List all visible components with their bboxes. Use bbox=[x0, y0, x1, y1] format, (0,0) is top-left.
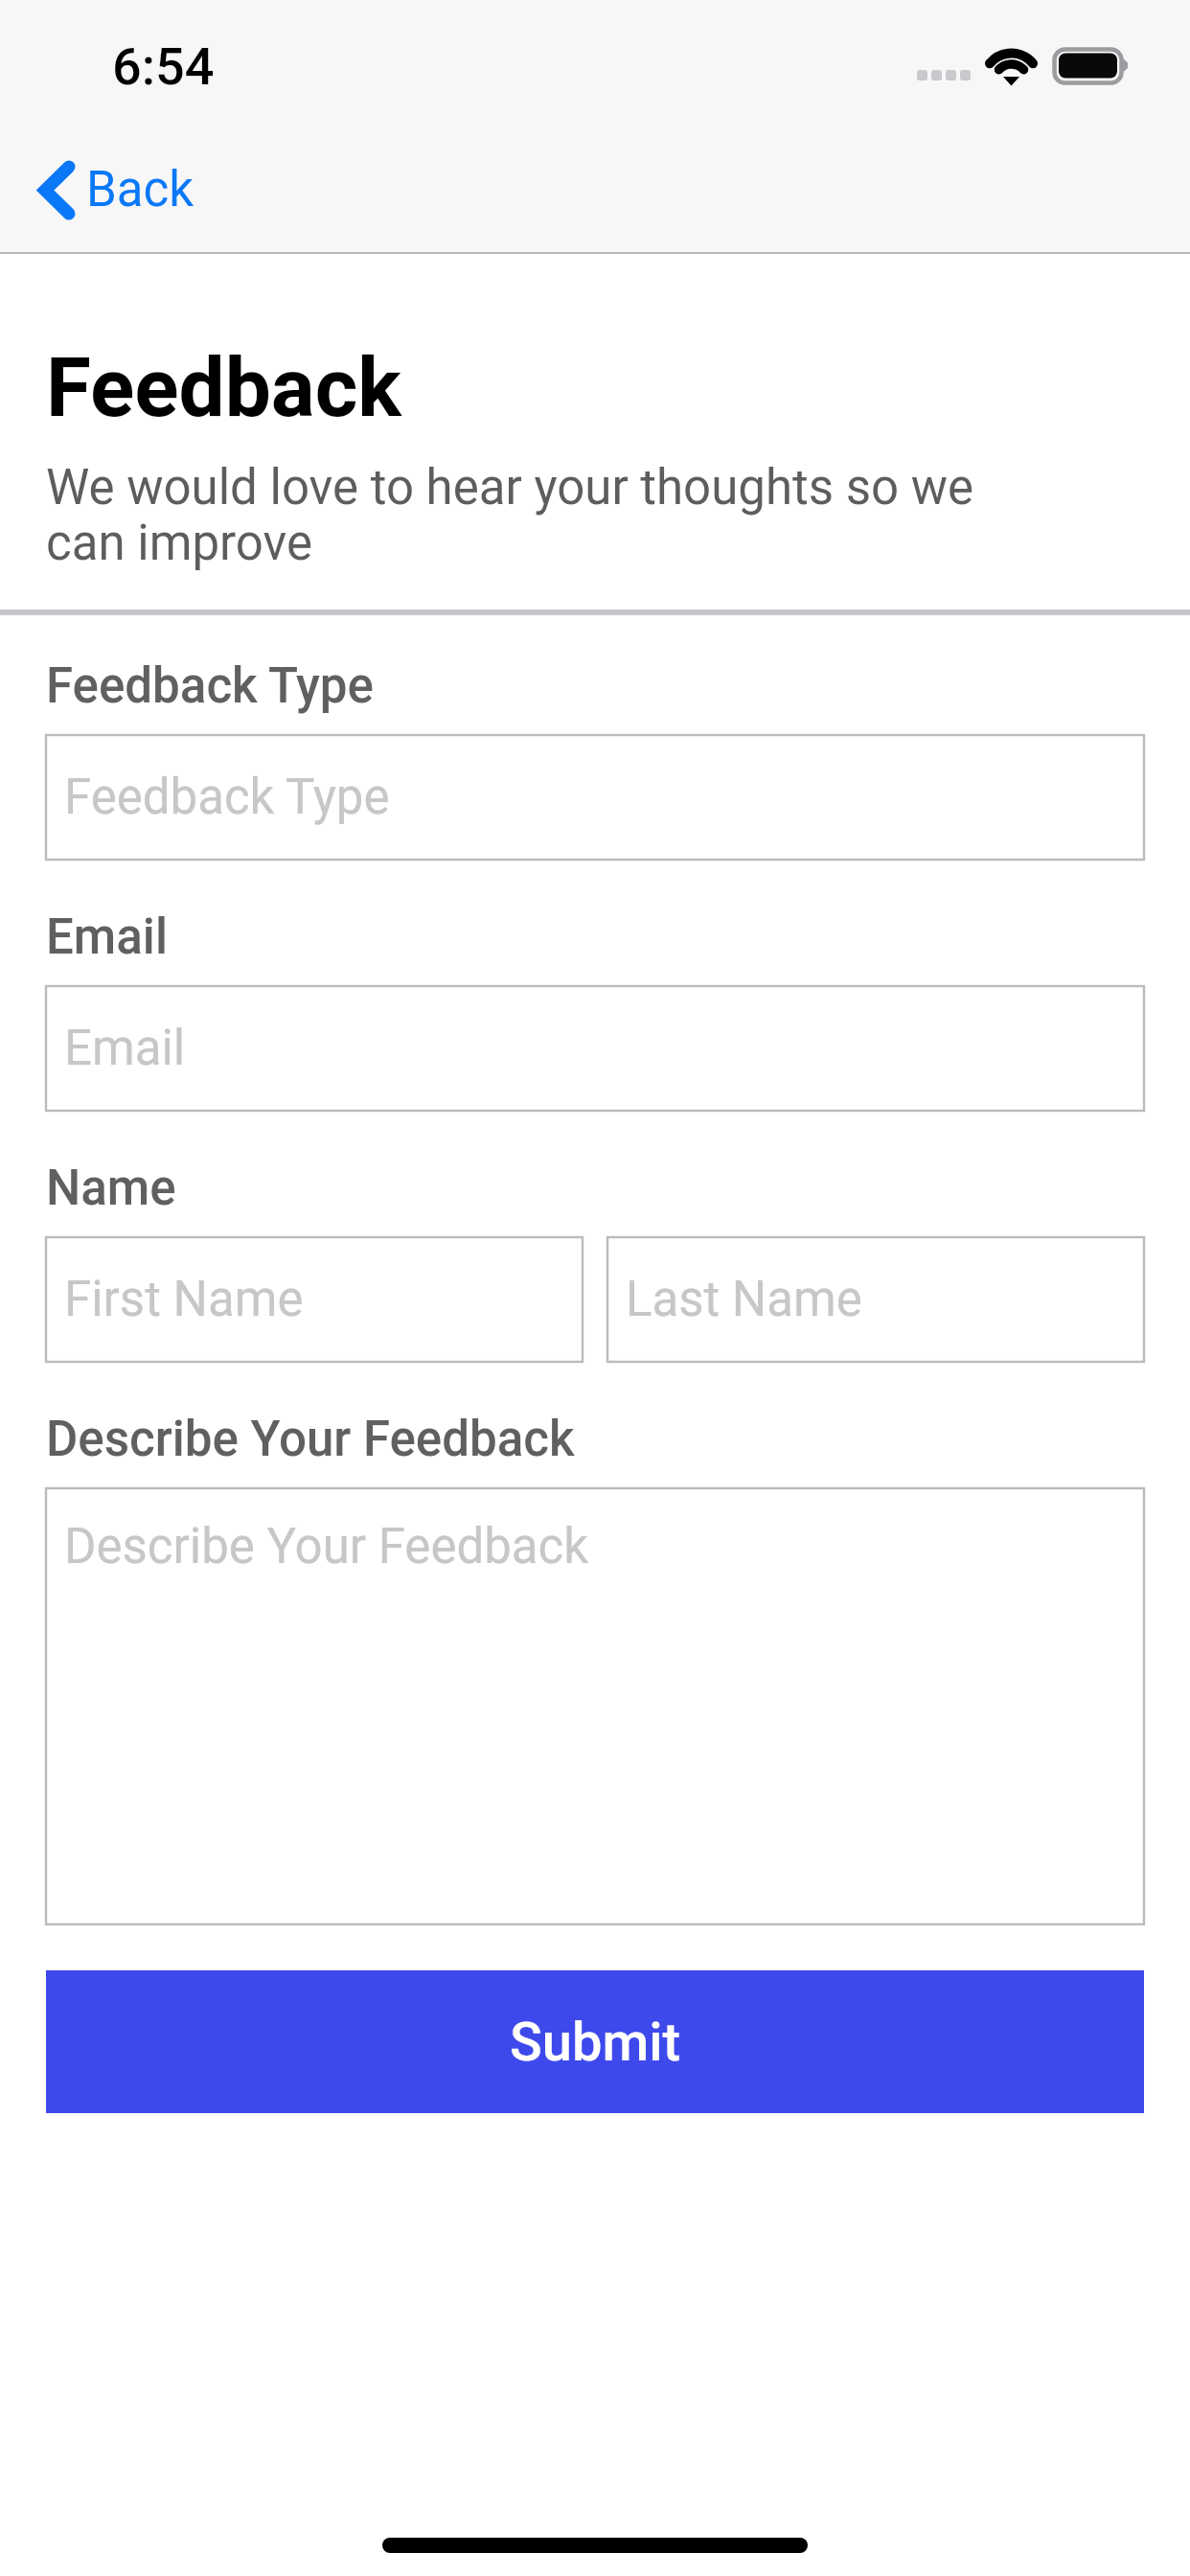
staticText: Submit bbox=[510, 2011, 681, 2074]
staticText: Email bbox=[64, 1020, 186, 1077]
staticText: Last Name bbox=[626, 1271, 862, 1328]
staticText: Feedback bbox=[46, 340, 401, 436]
button[interactable]: Submit bbox=[46, 1970, 1144, 2113]
button[interactable]: Feedback Type bbox=[46, 735, 1144, 860]
staticText: First Name bbox=[64, 1271, 304, 1328]
staticText: Describe Your Feedback bbox=[46, 1411, 575, 1468]
staticText: Feedback Type bbox=[46, 657, 374, 715]
staticText: Feedback Type bbox=[64, 769, 390, 826]
staticText: Email bbox=[46, 908, 168, 966]
staticText: We would love to hear your thoughts so w… bbox=[46, 460, 1023, 571]
staticText: Describe Your Feedback bbox=[64, 1518, 589, 1575]
staticText: 6:54 bbox=[112, 36, 215, 97]
button[interactable]: Last Name bbox=[607, 1237, 1144, 1362]
other: Status icons bbox=[908, 38, 1138, 92]
staticText: Back bbox=[86, 161, 195, 218]
staticText: Name bbox=[46, 1160, 176, 1217]
button[interactable]: Email bbox=[46, 986, 1144, 1111]
button[interactable]: Back bbox=[38, 131, 195, 248]
button[interactable]: Describe Your Feedback bbox=[46, 1488, 1144, 1924]
button[interactable]: First Name bbox=[46, 1237, 583, 1362]
